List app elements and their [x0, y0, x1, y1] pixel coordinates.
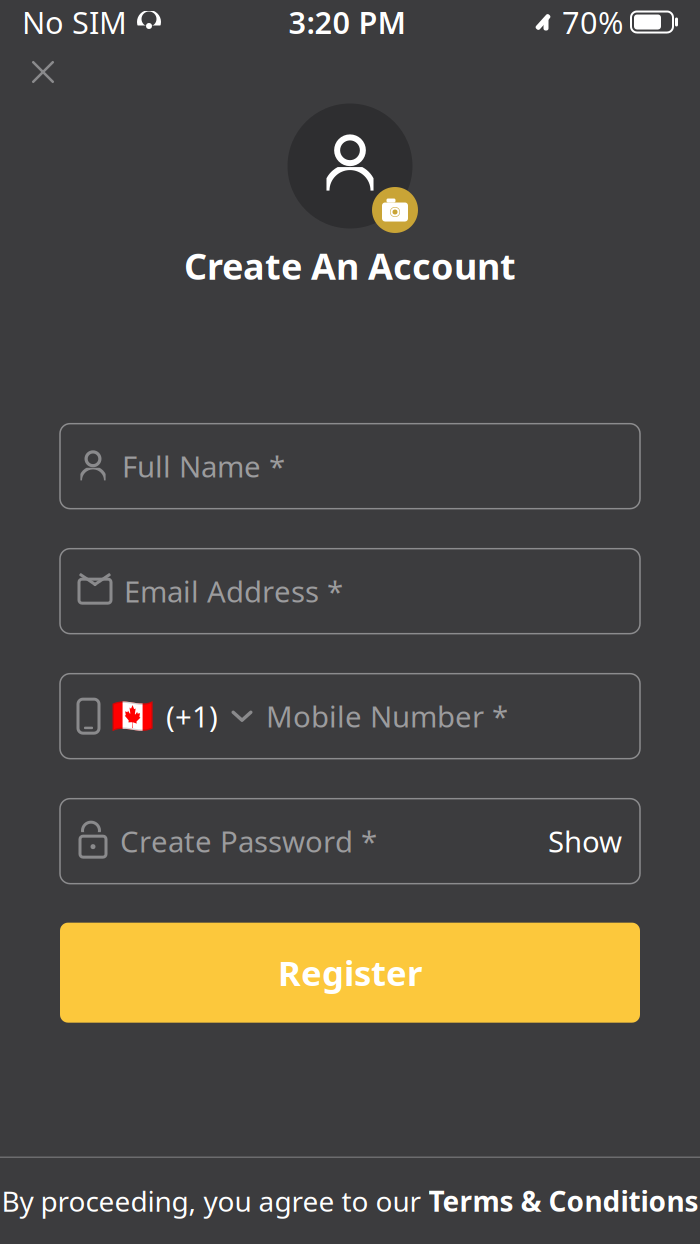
staticText: (+1) — [166, 697, 218, 736]
staticText: No SIM — [22, 2, 127, 42]
staticText: Create An Account — [184, 242, 516, 290]
button[interactable]: 🇨🇦 — [60, 674, 640, 759]
staticText: Mobile Number * — [266, 697, 508, 736]
button[interactable]: Change profile photo — [265, 100, 435, 232]
staticText: Show — [548, 822, 622, 861]
staticText: Register — [278, 950, 422, 996]
button[interactable]: Close — [16, 45, 70, 99]
button[interactable]: Email Address * — [60, 549, 640, 634]
staticText: 3:20 PM — [288, 2, 405, 42]
staticText: Email Address * — [124, 572, 343, 611]
staticText: Full Name * — [122, 447, 285, 486]
staticText: By proceeding, you agree to our — [1, 1182, 428, 1220]
staticText: Terms & Conditions — [428, 1182, 698, 1220]
staticText: Create Password * — [120, 822, 377, 861]
button[interactable]: Create Password * — [60, 799, 640, 884]
staticText: 70% — [562, 2, 623, 42]
button[interactable]: Full Name * — [60, 424, 640, 509]
button[interactable]: Register — [60, 923, 640, 1023]
button[interactable]: By proceeding, you agree to our — [0, 1158, 700, 1244]
staticText: 🇨🇦 — [111, 696, 154, 736]
